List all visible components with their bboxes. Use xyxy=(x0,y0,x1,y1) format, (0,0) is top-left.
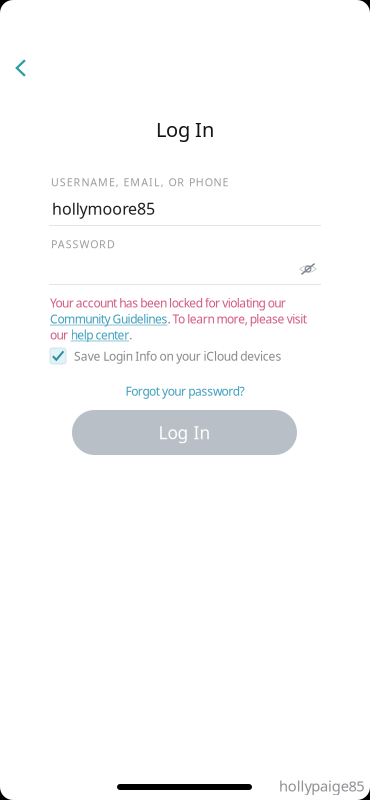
staticText: . To learn more, please visit xyxy=(167,311,307,327)
staticText: Save Login Info on your iCloud devices xyxy=(74,348,281,364)
staticText: Log In xyxy=(158,421,210,444)
staticText: Log In xyxy=(156,116,214,143)
staticText: our xyxy=(50,327,71,343)
staticText: . xyxy=(129,327,132,343)
button[interactable]: Log In xyxy=(72,410,297,455)
staticText: help center xyxy=(71,327,129,343)
staticText: hollypaige85 xyxy=(279,776,364,795)
staticText: hollymoore85 xyxy=(52,198,155,219)
button[interactable]: Show password xyxy=(291,254,325,284)
button[interactable]: Save Login Info on your iCloud devices xyxy=(50,348,330,364)
button[interactable]: Forgot your password? xyxy=(70,380,300,402)
staticText: Your account has been locked for violati… xyxy=(50,295,286,311)
staticText: Community Guidelines xyxy=(50,311,167,327)
staticText: PASSWORD xyxy=(51,237,115,251)
button[interactable]: Back xyxy=(0,47,42,89)
staticText: USERNAME, EMAIL, OR PHONE xyxy=(51,175,228,189)
staticText: Forgot your password? xyxy=(125,383,244,399)
